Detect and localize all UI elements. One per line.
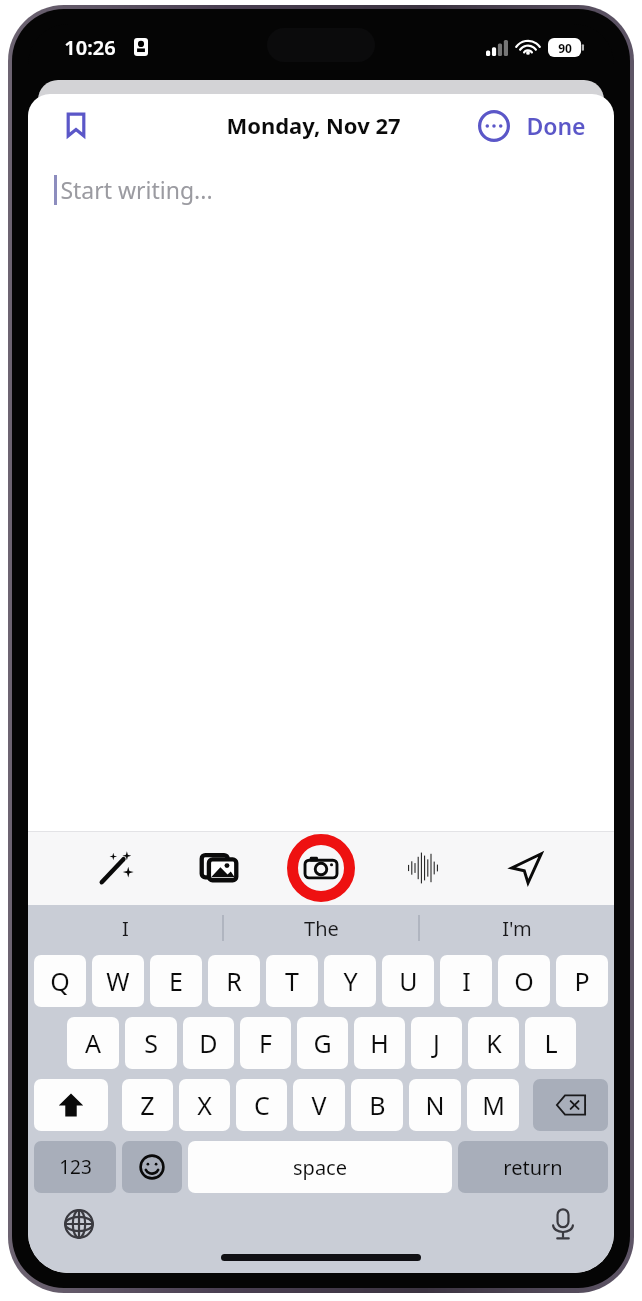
button[interactable]: T — [266, 955, 318, 1007]
button[interactable]: L — [525, 1017, 576, 1069]
staticText: B — [369, 1088, 386, 1122]
button[interactable]: Change keyboard — [58, 1203, 100, 1245]
staticText: Y — [343, 964, 358, 998]
staticText: 10:26 — [64, 34, 116, 61]
button[interactable]: G — [297, 1017, 348, 1069]
staticText: The — [304, 915, 339, 942]
button[interactable]: N — [409, 1079, 461, 1131]
staticText: Start writing... — [60, 174, 213, 205]
button[interactable]: I — [440, 955, 492, 1007]
button[interactable]: Done — [518, 102, 594, 149]
button[interactable]: B — [351, 1079, 403, 1131]
button[interactable]: Magic wand — [88, 840, 144, 896]
button[interactable]: E — [150, 955, 202, 1007]
button[interactable]: R — [208, 955, 260, 1007]
button[interactable]: W — [92, 955, 144, 1007]
button[interactable]: O — [498, 955, 550, 1007]
staticText: R — [226, 964, 242, 998]
button[interactable]: Audio — [395, 840, 451, 896]
button[interactable]: I — [28, 905, 222, 951]
button[interactable]: Photos — [191, 840, 247, 896]
button[interactable]: S — [125, 1017, 177, 1069]
staticText: Q — [50, 964, 70, 998]
staticText: F — [259, 1026, 272, 1060]
button[interactable]: Location — [498, 840, 554, 896]
staticText: V — [311, 1088, 327, 1122]
button[interactable]: J — [411, 1017, 462, 1069]
button[interactable]: Z — [122, 1079, 173, 1131]
staticText: E — [169, 964, 183, 998]
button[interactable]: Shift — [34, 1079, 108, 1131]
staticText: S — [144, 1026, 158, 1060]
staticText: space — [293, 1154, 347, 1181]
button[interactable]: I'm — [420, 905, 614, 951]
staticText: G — [313, 1026, 332, 1060]
staticText: X — [197, 1088, 212, 1122]
staticText: L — [544, 1026, 558, 1060]
button[interactable]: A — [67, 1017, 119, 1069]
button[interactable]: M — [467, 1079, 519, 1131]
staticText: N — [425, 1088, 445, 1122]
button[interactable]: V — [293, 1079, 345, 1131]
button[interactable]: X — [179, 1079, 230, 1131]
staticText: Monday, Nov 27 — [226, 110, 401, 140]
staticText: A — [85, 1026, 101, 1060]
staticText: D — [199, 1026, 218, 1060]
button[interactable]: U — [382, 955, 434, 1007]
staticText: P — [574, 964, 590, 998]
staticText: K — [486, 1026, 502, 1060]
staticText: U — [399, 964, 418, 998]
staticText: I'm — [502, 915, 532, 942]
button[interactable]: C — [236, 1079, 287, 1131]
staticText: I — [462, 964, 471, 998]
staticText: O — [514, 964, 534, 998]
button[interactable]: Backspace — [533, 1079, 608, 1131]
button[interactable]: The — [224, 905, 418, 951]
button[interactable]: space — [188, 1141, 452, 1193]
staticText: I — [122, 915, 129, 942]
button[interactable]: H — [354, 1017, 405, 1069]
button[interactable]: Camera — [293, 840, 349, 896]
button[interactable]: Y — [324, 955, 376, 1007]
button[interactable]: D — [183, 1017, 234, 1069]
button[interactable]: Bookmark — [54, 103, 98, 147]
staticText: Z — [140, 1088, 155, 1122]
button[interactable]: Q — [34, 955, 86, 1007]
staticText: W — [106, 964, 130, 998]
staticText: H — [370, 1026, 389, 1060]
button[interactable]: Dictation — [542, 1203, 584, 1245]
staticText: return — [503, 1154, 563, 1181]
staticText: 123 — [59, 1154, 92, 1180]
button[interactable]: return — [458, 1141, 608, 1193]
button[interactable]: Start writing... — [28, 156, 614, 831]
button[interactable]: More options — [472, 104, 516, 148]
button[interactable]: P — [556, 955, 608, 1007]
button[interactable]: K — [468, 1017, 519, 1069]
staticText: M — [482, 1088, 505, 1122]
staticText: J — [433, 1026, 440, 1060]
staticText: C — [254, 1088, 270, 1122]
staticText: Done — [526, 110, 586, 141]
button[interactable]: F — [240, 1017, 291, 1069]
staticText: T — [285, 964, 299, 998]
button[interactable]: 123 — [34, 1141, 116, 1193]
staticText: 90 — [558, 40, 572, 56]
button[interactable]: Emoji — [122, 1141, 182, 1193]
